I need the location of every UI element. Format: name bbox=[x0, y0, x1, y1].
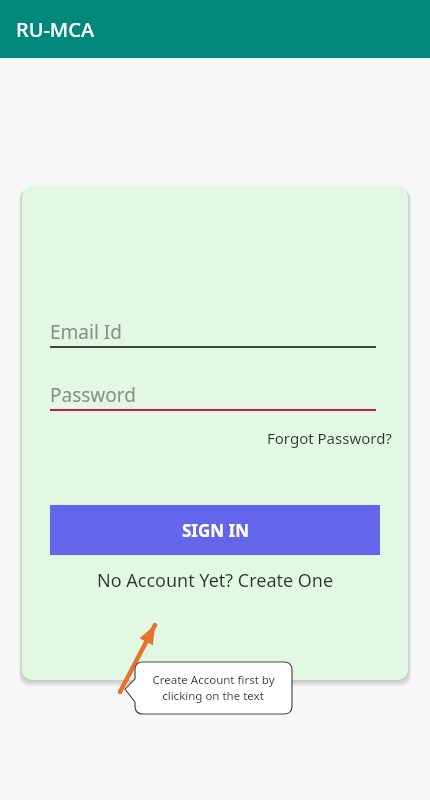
staticText: clicking on the text bbox=[162, 688, 264, 704]
button[interactable]: Password bbox=[50, 379, 376, 411]
button[interactable]: Forgot Password? bbox=[263, 424, 396, 452]
staticText: Forgot Password? bbox=[267, 428, 392, 448]
staticText: No Account Yet? Create One bbox=[97, 568, 334, 593]
staticText: SIGN IN bbox=[182, 519, 249, 542]
other: Hint arrow bbox=[105, 612, 175, 704]
staticText: Email Id bbox=[50, 319, 122, 345]
button[interactable]: SIGN IN bbox=[50, 505, 380, 555]
staticText: Create Account first by bbox=[152, 672, 275, 688]
staticText: Password bbox=[50, 382, 136, 408]
staticText: RU-MCA bbox=[16, 16, 94, 43]
button[interactable]: Email Id bbox=[50, 316, 376, 348]
button[interactable]: No Account Yet? Create One bbox=[89, 566, 342, 595]
